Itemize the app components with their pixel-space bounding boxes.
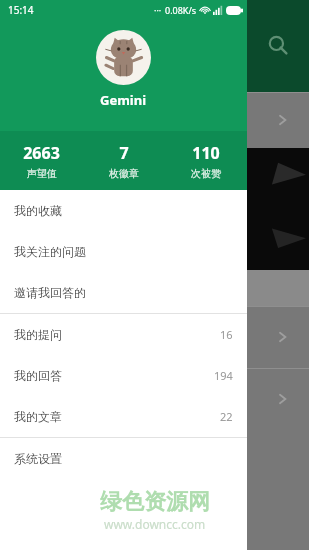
button[interactable]: 2663 — [0, 131, 83, 190]
staticText: 16 — [220, 327, 233, 342]
button[interactable] — [0, 368, 309, 430]
button[interactable]: 我的收藏 — [0, 190, 247, 231]
button[interactable]: 我的回答 — [0, 355, 247, 396]
staticText: Gemini — [100, 91, 147, 109]
button[interactable]: 7 — [83, 131, 165, 190]
staticText: 我关注的问题 — [14, 244, 86, 259]
staticText: 绿色资源网 — [100, 488, 210, 516]
button[interactable]: Profile avatar — [96, 30, 151, 85]
staticText: 我的提问 — [14, 327, 62, 342]
staticText: www.downcc.com — [104, 516, 206, 532]
button[interactable]: 我的提问 — [0, 314, 247, 355]
staticText: 0.08K/s — [165, 4, 197, 16]
staticText: 枚徽章 — [109, 167, 139, 180]
staticText: 次被赞 — [191, 167, 221, 180]
button[interactable]: 系统设置 — [0, 438, 247, 479]
button[interactable] — [0, 306, 309, 368]
staticText: 2663 — [23, 142, 60, 164]
staticText: 15:14 — [8, 3, 34, 17]
staticText: ··· — [154, 4, 162, 16]
staticText: 7 — [119, 142, 129, 164]
button[interactable]: 我的文章 — [0, 396, 247, 437]
button[interactable] — [0, 92, 309, 148]
staticText: 110 — [192, 142, 220, 164]
staticText: 我的回答 — [14, 368, 62, 383]
staticText: 22 — [220, 409, 233, 424]
staticText: 194 — [214, 368, 233, 383]
button[interactable]: Search — [261, 28, 295, 62]
staticText: 我的收藏 — [14, 203, 62, 218]
staticText: 声望值 — [27, 167, 57, 180]
staticText: 邀请我回答的 — [14, 285, 86, 300]
staticText: 我的文章 — [14, 409, 62, 424]
button[interactable]: 我关注的问题 — [0, 231, 247, 272]
button[interactable]: 邀请我回答的 — [0, 272, 247, 313]
button[interactable]: 110 — [165, 131, 247, 190]
staticText: 系统设置 — [14, 451, 62, 466]
